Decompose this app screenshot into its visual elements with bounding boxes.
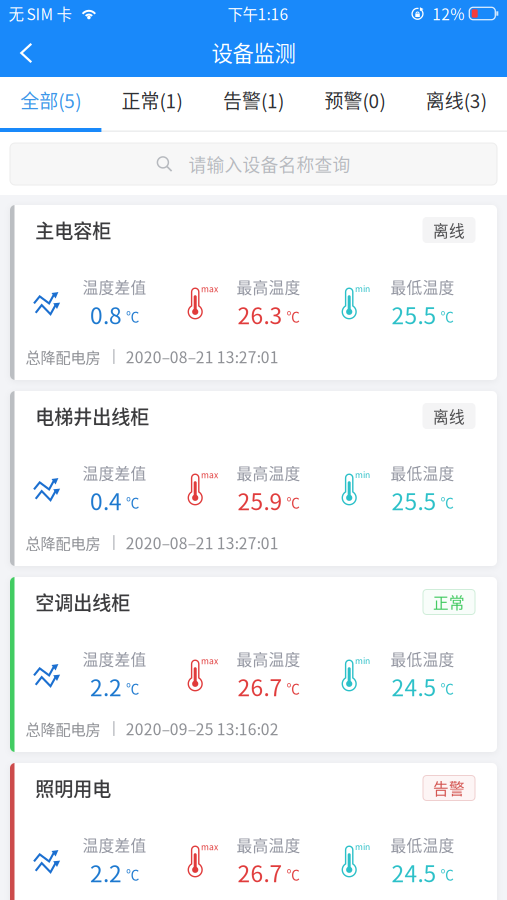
staticText: min	[355, 654, 370, 667]
staticText: 正常	[433, 591, 465, 613]
staticText: 请输入设备名称查询	[188, 151, 350, 177]
staticText: ℃	[287, 678, 300, 697]
staticText: 温度差值	[83, 647, 147, 670]
staticText: 离线	[433, 405, 465, 427]
staticText: ℃	[287, 306, 300, 325]
staticText: 最高温度	[237, 647, 301, 670]
staticText: 2.2	[90, 670, 122, 703]
staticText: 24.5	[392, 856, 437, 889]
button[interactable]: 全部(5)	[0, 77, 101, 123]
staticText: 照明用电	[35, 774, 111, 802]
staticText: 温度差值	[83, 461, 147, 484]
button[interactable]: 预警(0)	[304, 77, 406, 123]
staticText: 最低温度	[391, 461, 455, 484]
staticText: max	[201, 654, 218, 667]
button[interactable]: 离线(3)	[406, 77, 507, 123]
staticText: 最高温度	[237, 275, 301, 298]
staticText: 离线	[433, 219, 465, 241]
staticText: 告警	[433, 777, 465, 799]
staticText: max	[201, 282, 218, 295]
staticText: 总降配电房	[25, 531, 100, 553]
staticText: 温度差值	[83, 275, 147, 298]
staticText: 总降配电房	[25, 345, 100, 367]
staticText: ℃	[441, 492, 454, 511]
staticText: 预警(0)	[324, 86, 385, 114]
staticText: 24.5	[392, 670, 437, 703]
staticText: 温度差值	[83, 833, 147, 856]
button[interactable]: 告警(1)	[203, 77, 304, 123]
staticText: 25.5	[392, 484, 437, 517]
staticText: max	[201, 840, 218, 853]
button[interactable]: 空调出线柜	[10, 577, 497, 752]
staticText: 2020–09–25 13:16:02	[126, 717, 279, 740]
staticText: 告警(1)	[223, 86, 284, 114]
staticText: 2.2	[90, 856, 122, 889]
staticText: min	[355, 468, 370, 481]
staticText: 主电容柜	[35, 216, 111, 244]
staticText: ℃	[126, 864, 139, 883]
button[interactable]: 电梯井出线柜	[10, 391, 497, 566]
staticText: ℃	[287, 864, 300, 883]
staticText: 26.7	[238, 670, 283, 703]
staticText: 无 SIM 卡	[8, 2, 71, 25]
staticText: ℃	[126, 492, 139, 511]
staticText: min	[355, 840, 370, 853]
staticText: 下午1:16	[227, 2, 288, 25]
staticText: 设备监测	[211, 37, 295, 67]
staticText: ℃	[126, 306, 139, 325]
staticText: 26.7	[238, 856, 283, 889]
staticText: 25.5	[392, 298, 437, 331]
staticText: 2020–08–21 13:27:01	[126, 531, 279, 554]
staticText: max	[201, 468, 218, 481]
staticText: 2020–08–21 13:27:01	[126, 345, 279, 368]
staticText: min	[355, 282, 370, 295]
button[interactable]: 请输入设备名称查询	[10, 143, 497, 185]
staticText: ℃	[441, 678, 454, 697]
staticText: 最高温度	[237, 461, 301, 484]
staticText: 最低温度	[391, 647, 455, 670]
staticText: 最低温度	[391, 275, 455, 298]
staticText: 总降配电房	[25, 717, 100, 739]
button[interactable]: 照明用电	[10, 763, 497, 900]
staticText: 0.8	[90, 298, 122, 331]
button[interactable]: 主电容柜	[10, 205, 497, 380]
staticText: 最高温度	[237, 833, 301, 856]
staticText: ℃	[287, 492, 300, 511]
staticText: 0.4	[90, 484, 122, 517]
staticText: 25.9	[238, 484, 283, 517]
staticText: ℃	[441, 864, 454, 883]
staticText: ℃	[126, 678, 139, 697]
staticText: 正常(1)	[122, 86, 183, 114]
staticText: 12%	[432, 2, 464, 25]
staticText: ℃	[441, 306, 454, 325]
staticText: 26.3	[238, 298, 283, 331]
button[interactable]: 返回	[0, 27, 49, 76]
staticText: 全部(5)	[20, 86, 81, 114]
button[interactable]: 正常(1)	[101, 77, 203, 123]
staticText: 空调出线柜	[35, 588, 130, 616]
staticText: 最低温度	[391, 833, 455, 856]
staticText: 电梯井出线柜	[35, 402, 149, 430]
staticText: 离线(3)	[426, 86, 487, 114]
